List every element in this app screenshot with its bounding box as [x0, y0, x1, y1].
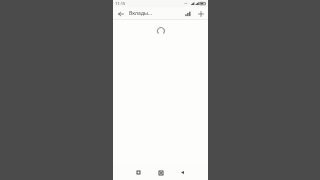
staticText: 11:15: [115, 1, 126, 6]
button[interactable]: Home: [156, 168, 165, 177]
button[interactable]: Back: [115, 8, 126, 19]
button[interactable]: Recent apps: [134, 168, 143, 177]
button[interactable]: Back: [178, 168, 187, 177]
button[interactable]: Add: [195, 8, 206, 19]
staticText: Вкладыши: [129, 10, 155, 17]
button[interactable]: Statistics: [182, 8, 193, 19]
